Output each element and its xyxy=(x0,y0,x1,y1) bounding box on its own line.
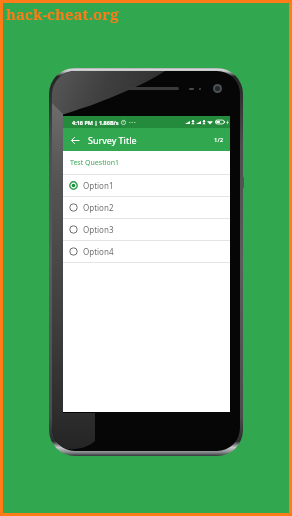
staticText: 1/2 xyxy=(214,136,224,144)
button[interactable]: Option4 xyxy=(63,241,230,262)
staticText: Option2 xyxy=(83,202,114,213)
staticText: 4:16 PM | 1.86B/s xyxy=(72,119,119,126)
staticText: • • • xyxy=(129,120,136,125)
button[interactable]: Option3 xyxy=(63,219,230,240)
button[interactable]: Option1 xyxy=(63,175,230,196)
staticText: Test Question1 xyxy=(70,158,120,168)
staticText: Option3 xyxy=(83,224,114,235)
button[interactable]: Option2 xyxy=(63,197,230,218)
staticText: Option4 xyxy=(83,246,114,257)
button[interactable]: Back xyxy=(68,133,82,147)
staticText: Option1 xyxy=(83,180,114,191)
staticText: Survey Title xyxy=(88,134,137,146)
staticText: hack-cheat.org xyxy=(6,4,119,24)
